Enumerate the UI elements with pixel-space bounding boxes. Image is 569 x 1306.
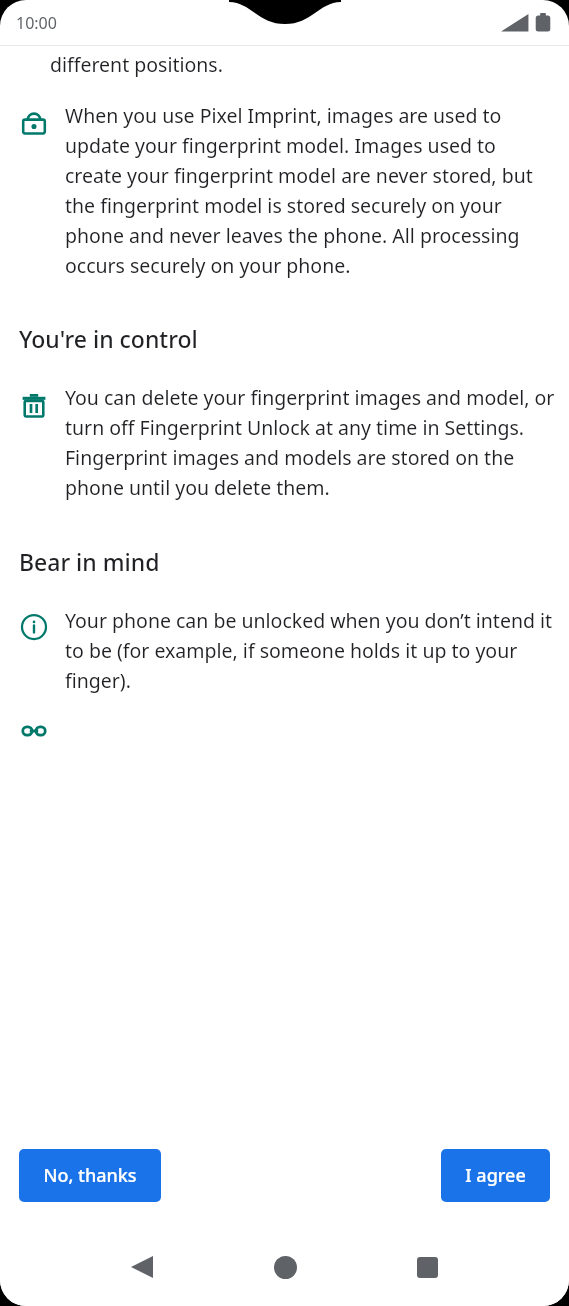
staticText: When you use Pixel Imprint, images are u… bbox=[65, 102, 547, 278]
staticText: different positions. bbox=[50, 51, 223, 78]
button[interactable]: Recent apps bbox=[397, 1237, 457, 1297]
staticText: 10:00 bbox=[16, 12, 57, 34]
button[interactable]: Learn more link bbox=[19, 719, 49, 743]
staticText: You're in control bbox=[19, 323, 198, 354]
staticText: No, thanks bbox=[43, 1163, 137, 1188]
button[interactable]: Back bbox=[112, 1237, 172, 1297]
button[interactable]: No, thanks bbox=[19, 1149, 161, 1202]
staticText: Your phone can be unlocked when you don’… bbox=[65, 607, 556, 693]
staticText: I agree bbox=[465, 1163, 526, 1188]
staticText: Bear in mind bbox=[19, 546, 160, 577]
staticText: You can delete your fingerprint images a… bbox=[65, 384, 555, 500]
button[interactable]: I agree bbox=[441, 1149, 550, 1202]
button[interactable]: Home bbox=[255, 1237, 315, 1297]
